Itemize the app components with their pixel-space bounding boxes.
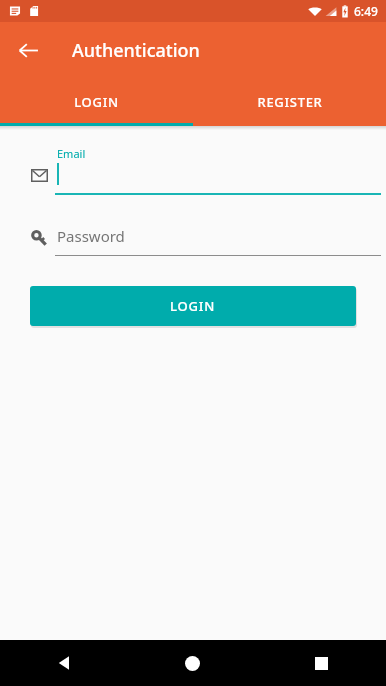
button[interactable]: Email bbox=[30, 144, 356, 204]
button[interactable]: Back bbox=[8, 30, 48, 70]
staticText: Password bbox=[57, 226, 125, 246]
staticText: Authentication bbox=[72, 38, 200, 63]
button[interactable]: LOGIN bbox=[0, 78, 193, 126]
button[interactable]: LOGIN bbox=[30, 286, 356, 326]
staticText: REGISTER bbox=[257, 93, 323, 111]
staticText: LOGIN bbox=[74, 93, 119, 111]
button[interactable]: REGISTER bbox=[193, 78, 386, 126]
staticText: Email bbox=[57, 146, 86, 161]
staticText: 6:49 bbox=[354, 3, 378, 19]
button[interactable]: Home bbox=[128, 640, 257, 686]
staticText: LOGIN bbox=[170, 297, 216, 315]
button[interactable]: Recent apps bbox=[257, 640, 386, 686]
button[interactable]: Back bbox=[0, 640, 128, 686]
button[interactable]: Password bbox=[30, 226, 356, 264]
